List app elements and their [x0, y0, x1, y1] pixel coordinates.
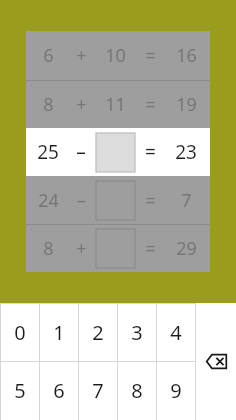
- staticText: +: [76, 92, 87, 117]
- staticText: 9: [170, 377, 182, 404]
- staticText: 10: [105, 43, 126, 68]
- staticText: 11: [105, 92, 126, 117]
- staticText: 8: [131, 377, 143, 404]
- button[interactable]: 25: [26, 128, 210, 176]
- staticText: 0: [14, 319, 26, 346]
- button[interactable]: 6: [39, 361, 78, 420]
- button[interactable]: 6: [26, 31, 210, 80]
- staticText: 25: [37, 139, 59, 165]
- button[interactable]: 5: [0, 361, 39, 420]
- staticText: –: [76, 139, 86, 165]
- button[interactable]: 1: [39, 303, 78, 361]
- button[interactable]: 3: [117, 303, 156, 361]
- staticText: =: [145, 43, 156, 68]
- button[interactable]: 8: [117, 361, 156, 420]
- staticText: 5: [14, 377, 26, 404]
- button[interactable]: 4: [156, 303, 195, 361]
- staticText: 2: [92, 319, 104, 346]
- staticText: 1: [53, 319, 65, 346]
- button[interactable]: 8: [26, 224, 210, 272]
- staticText: =: [145, 139, 156, 165]
- button[interactable]: 2: [78, 303, 117, 361]
- staticText: 19: [176, 92, 197, 117]
- staticText: 7: [92, 377, 104, 404]
- staticText: 24: [38, 188, 59, 213]
- staticText: 23: [175, 139, 197, 165]
- button[interactable]: 24: [26, 176, 210, 224]
- button[interactable]: 8: [26, 80, 210, 128]
- staticText: 6: [43, 43, 54, 68]
- button[interactable]: 0: [0, 303, 39, 361]
- button[interactable]: [96, 133, 135, 172]
- staticText: 29: [176, 236, 197, 261]
- staticText: 8: [43, 92, 54, 117]
- staticText: +: [76, 43, 87, 68]
- staticText: –: [77, 188, 86, 213]
- button[interactable]: [96, 229, 135, 268]
- staticText: =: [145, 92, 156, 117]
- button[interactable]: 9: [156, 361, 195, 420]
- staticText: 6: [53, 377, 65, 404]
- staticText: 4: [170, 319, 182, 346]
- staticText: 7: [181, 188, 192, 213]
- staticText: 8: [43, 236, 54, 261]
- staticText: =: [145, 236, 156, 261]
- staticText: 16: [176, 43, 197, 68]
- button[interactable]: [96, 181, 135, 220]
- button[interactable]: Backspace: [196, 303, 236, 420]
- staticText: +: [76, 236, 87, 261]
- staticText: =: [145, 188, 156, 213]
- button[interactable]: 7: [78, 361, 117, 420]
- staticText: 3: [131, 319, 143, 346]
